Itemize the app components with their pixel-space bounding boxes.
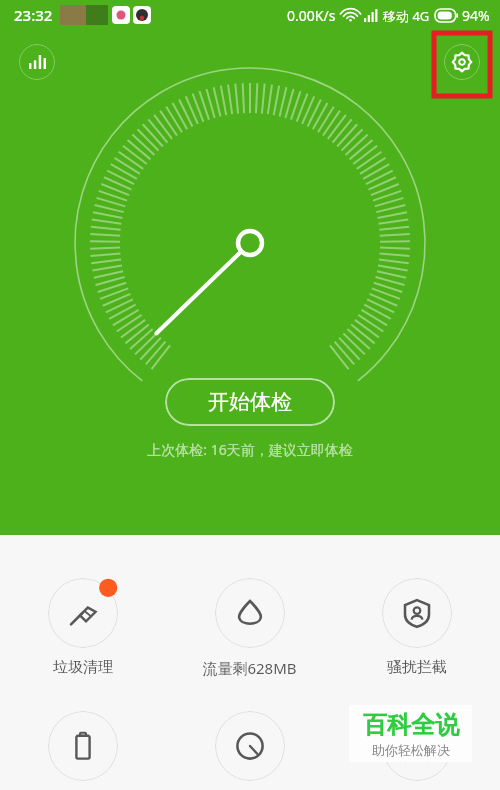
staticText: 流量剩628MB	[202, 658, 297, 678]
staticText: 骚扰拦截	[387, 658, 447, 677]
button[interactable]: Statistics	[19, 44, 55, 80]
staticText: 百科全说	[363, 710, 459, 740]
staticText: 23:32	[14, 5, 53, 25]
button[interactable]	[333, 711, 500, 781]
button[interactable]: Settings	[444, 44, 480, 80]
button[interactable]: 流量剩628MB	[166, 578, 333, 678]
staticText: 助你轻松解决	[372, 742, 450, 758]
button[interactable]: 骚扰拦截	[333, 578, 500, 677]
staticText: 开始体检	[208, 389, 292, 415]
staticText: 上次体检: 16天前，建议立即体检	[147, 440, 353, 459]
staticText: 0.00K/s	[287, 6, 336, 25]
staticText: 94%	[462, 6, 490, 25]
staticText: 移动 4G	[383, 7, 430, 25]
button[interactable]: 开始体检	[165, 378, 335, 426]
button[interactable]: 垃圾清理	[0, 578, 166, 677]
button[interactable]	[0, 711, 166, 781]
button[interactable]	[166, 711, 333, 781]
staticText: 垃圾清理	[53, 658, 113, 677]
